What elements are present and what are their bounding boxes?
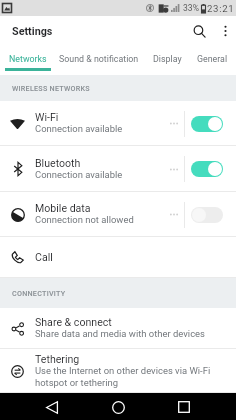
staticText: Connection available	[35, 169, 123, 180]
staticText: Connection not allowed	[35, 214, 134, 225]
staticText: General	[197, 54, 228, 64]
button[interactable]: Wi-Fi	[0, 101, 236, 146]
staticText: Mobile data	[35, 202, 91, 214]
button[interactable]: More options	[214, 16, 236, 46]
staticText: 33%	[183, 3, 199, 13]
button[interactable]: Sound & notification	[57, 46, 141, 75]
button[interactable]: Toggle Mobile data	[185, 192, 236, 237]
staticText: Call	[35, 251, 53, 263]
button[interactable]: Recents	[172, 395, 196, 419]
staticText: Settings	[12, 25, 53, 38]
button[interactable]: Search	[184, 16, 214, 46]
staticText: Sound & notification	[59, 54, 139, 64]
button[interactable]: Back	[40, 395, 64, 419]
staticText: Tethering	[35, 353, 80, 365]
button[interactable]: Mobile data options	[162, 192, 184, 237]
button[interactable]: Toggle Wi-Fi	[185, 101, 236, 146]
staticText: Use the Internet on other devices via Wi…	[35, 365, 227, 388]
staticText: Bluetooth	[35, 157, 81, 169]
staticText: 23:21	[207, 3, 235, 14]
button[interactable]: Bluetooth options	[162, 146, 184, 192]
button[interactable]: Wi-Fi options	[162, 101, 184, 146]
button[interactable]: Toggle Bluetooth	[185, 146, 236, 192]
staticText: Wi-Fi	[35, 111, 59, 123]
staticText: Networks	[9, 54, 47, 64]
button[interactable]: General	[193, 46, 232, 75]
button[interactable]: Tethering	[0, 349, 236, 393]
staticText: Share & connect	[35, 316, 112, 328]
button[interactable]: Bluetooth	[0, 146, 236, 192]
staticText: WIRELESS NETWORKS	[12, 84, 90, 92]
button[interactable]: Call	[0, 237, 236, 278]
staticText: Share data and media with other devices	[35, 328, 205, 339]
staticText: CONNECTIVITY	[12, 289, 66, 297]
button[interactable]: Display	[150, 46, 184, 75]
staticText: Connection available	[35, 123, 123, 134]
button[interactable]: Home	[106, 395, 130, 419]
button[interactable]: Mobile data	[0, 192, 236, 237]
button[interactable]: Share & connect	[0, 308, 236, 349]
button[interactable]: Networks	[5, 46, 51, 75]
staticText: Display	[153, 54, 182, 64]
